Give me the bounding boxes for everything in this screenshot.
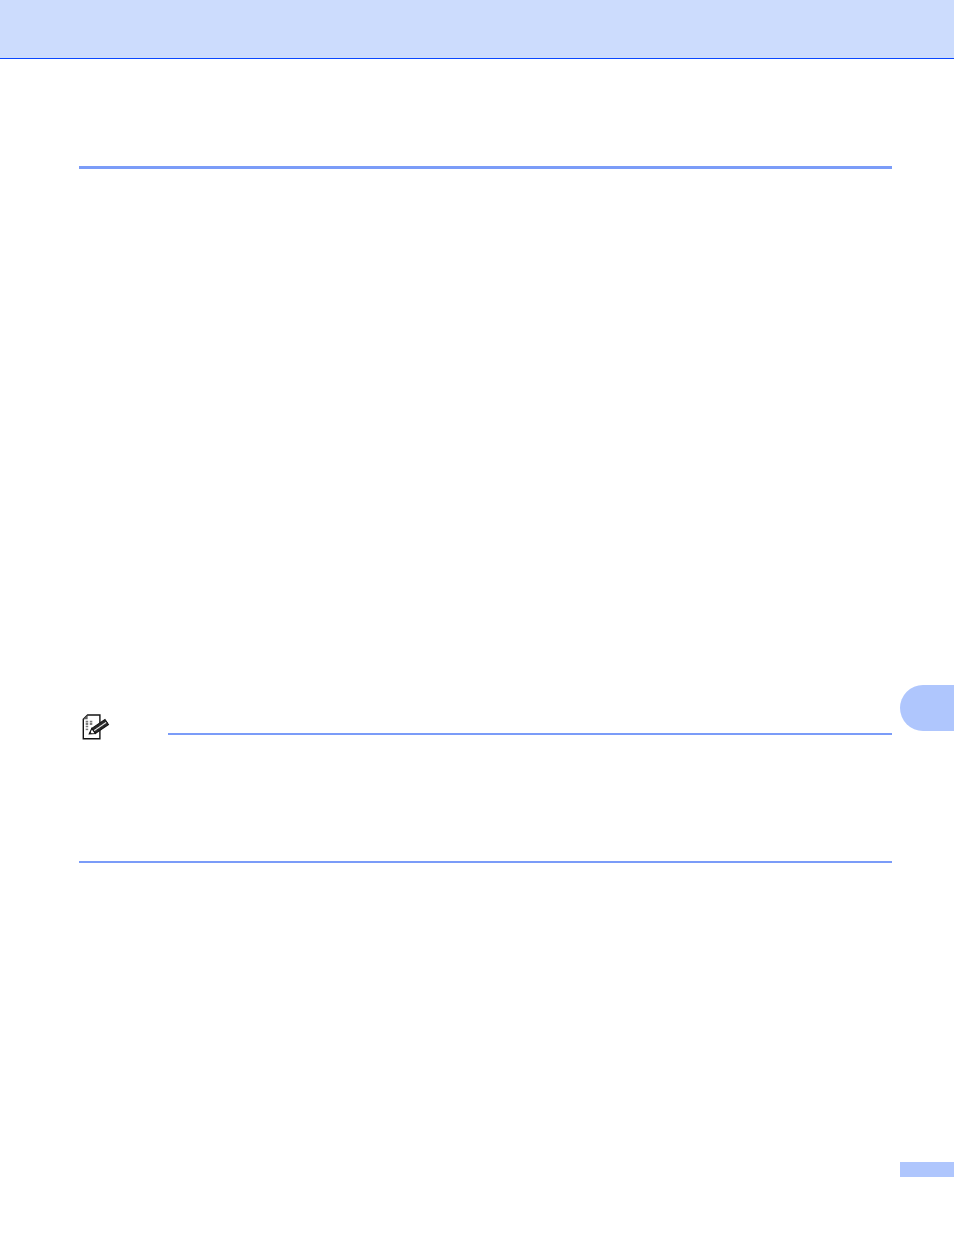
button[interactable]: Chapter tab bbox=[900, 685, 954, 731]
button[interactable]: Note bbox=[82, 713, 109, 741]
